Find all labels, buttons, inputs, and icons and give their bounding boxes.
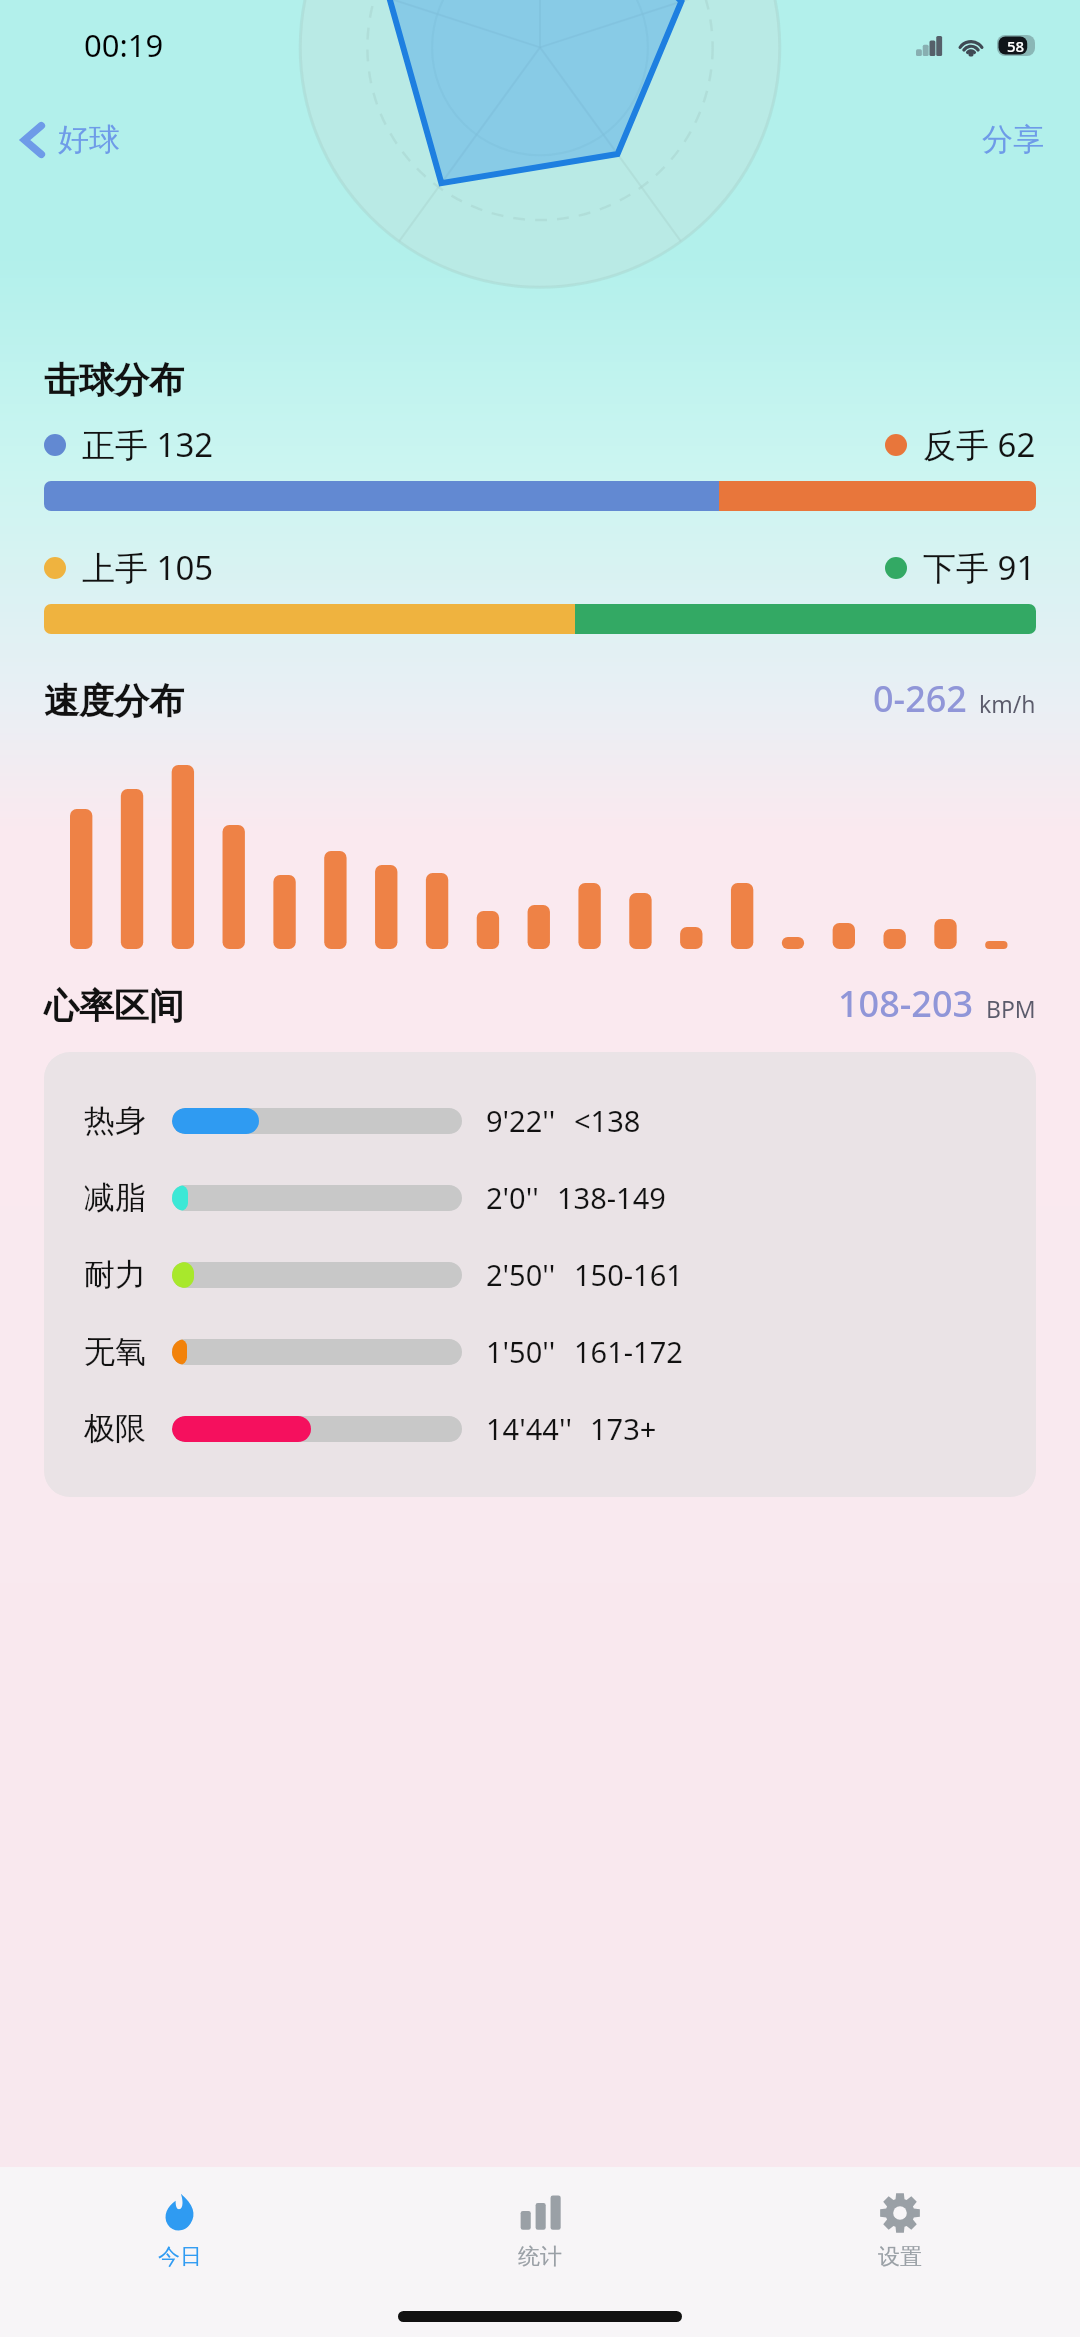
staticText: <138 <box>574 1101 641 1140</box>
staticText: 2'50'' <box>486 1255 556 1294</box>
staticText: 14'44'' <box>486 1409 572 1448</box>
staticText: 极限 <box>84 1409 146 1448</box>
staticText: 108-203 <box>838 979 974 1028</box>
staticText: 统计 <box>518 2243 562 2271</box>
staticText: 173+ <box>590 1409 657 1448</box>
staticText: 150-161 <box>574 1255 683 1294</box>
staticText: 反手 62 <box>923 422 1036 467</box>
staticText: BPM <box>986 993 1036 1024</box>
staticText: 正手 132 <box>82 422 214 467</box>
button[interactable]: 极限 <box>44 1390 1036 1467</box>
button[interactable]: 好球 <box>0 110 138 169</box>
staticText: 击球分布 <box>44 358 184 402</box>
button[interactable]: 统计 <box>360 2167 720 2295</box>
staticText: 00:19 <box>84 24 164 66</box>
button[interactable]: 分享 <box>946 108 1080 171</box>
staticText: 2'0'' <box>486 1178 539 1217</box>
button[interactable]: 耐力 <box>44 1236 1036 1313</box>
button[interactable]: 热身 <box>44 1082 1036 1159</box>
button[interactable]: 设置 <box>720 2167 1080 2295</box>
button[interactable]: 减脂 <box>44 1159 1036 1236</box>
staticText: km/h <box>979 688 1036 719</box>
staticText: 耐力 <box>84 1255 146 1294</box>
staticText: 1'50'' <box>486 1332 556 1371</box>
staticText: 今日 <box>158 2243 202 2271</box>
staticText: 热身 <box>84 1101 146 1140</box>
other: 统计 <box>518 2191 562 2235</box>
staticText: 减脂 <box>84 1178 146 1217</box>
staticText: 心率区间 <box>44 984 184 1028</box>
staticText: 无氧 <box>84 1332 146 1371</box>
button[interactable]: 今日 <box>0 2167 360 2295</box>
button[interactable]: 无氧 <box>44 1313 1036 1390</box>
staticText: 0-262 <box>873 674 967 723</box>
staticText: 下手 91 <box>923 545 1036 590</box>
staticText: 58 <box>1007 36 1025 56</box>
staticText: 161-172 <box>574 1332 683 1371</box>
other: 今日 <box>158 2191 202 2235</box>
staticText: 上手 105 <box>82 545 214 590</box>
staticText: 速度分布 <box>44 679 184 723</box>
staticText: 9'22'' <box>486 1101 556 1140</box>
staticText: 好球 <box>58 120 120 159</box>
staticText: 设置 <box>878 2243 922 2271</box>
other: 设置 <box>878 2191 922 2235</box>
staticText: 138-149 <box>557 1178 666 1217</box>
